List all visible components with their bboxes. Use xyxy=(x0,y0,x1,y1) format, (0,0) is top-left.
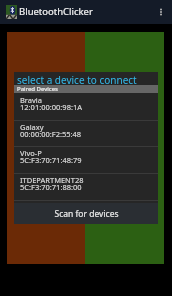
staticText: Bravia xyxy=(20,95,42,105)
staticText: 5C:F3:70:71:48:79 xyxy=(20,155,82,165)
button[interactable]: Scan for devices xyxy=(14,203,158,224)
staticText: 5C:F3:70:71:88:00 xyxy=(20,182,82,192)
button[interactable]: Vivo-P xyxy=(14,147,158,174)
staticText: 12:01:00:00:98:1A xyxy=(20,102,83,112)
button[interactable]: Bravia xyxy=(14,94,158,121)
button[interactable]: More options xyxy=(152,3,170,21)
staticText: select a device to connect xyxy=(17,73,137,87)
staticText: Scan for devices xyxy=(54,208,119,220)
staticText: Vivo-P xyxy=(20,148,42,158)
staticText: 00:00:00:F2:55:48 xyxy=(20,129,82,139)
button[interactable]: Galaxy xyxy=(14,121,158,147)
button[interactable]: ITDEPARTMENT28 xyxy=(14,174,158,201)
staticText: Galaxy xyxy=(20,122,44,132)
staticText: ITDEPARTMENT28 xyxy=(20,175,84,185)
staticText: Paired Devices xyxy=(17,85,58,93)
staticText: BluetoothClicker xyxy=(19,5,93,18)
